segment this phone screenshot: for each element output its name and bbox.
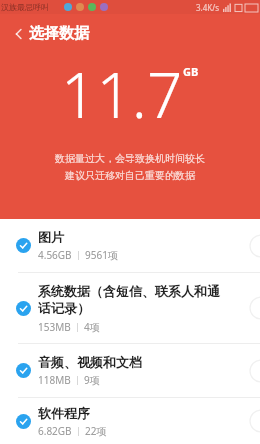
staticText: 4.56GB	[38, 248, 72, 262]
staticText: GB	[183, 64, 199, 79]
staticText: 4项	[84, 320, 100, 334]
staticText: 系统数据（含短信、联系人和通 话记录）	[38, 283, 220, 317]
staticText: 118MB	[38, 373, 71, 387]
staticText: 建议只迁移对自己重要的数据	[65, 169, 195, 182]
staticText: 153MB	[38, 320, 71, 334]
button[interactable]: 音频、视频和文档	[0, 344, 260, 397]
staticText: 22项	[85, 424, 107, 438]
button[interactable]: 返回	[4, 19, 34, 49]
staticText: 音频、视频和文档	[38, 354, 142, 370]
staticText: 11.7	[61, 52, 183, 136]
staticText: 3.4K/s	[196, 2, 220, 13]
staticText: 数据量过大，会导致换机时间较长	[55, 152, 205, 165]
staticText: 图片	[38, 229, 64, 245]
staticText: 6.82GB	[38, 424, 72, 438]
button[interactable]: 系统数据（含短信、联系人和通 话记录）	[0, 273, 260, 343]
staticText: 9项	[84, 373, 100, 387]
staticText: 9561项	[85, 248, 118, 262]
staticText: 选择数据	[29, 24, 89, 43]
staticText: 汉族最忌呼叫	[1, 2, 49, 12]
button[interactable]: 软件程序	[0, 398, 260, 444]
staticText: 软件程序	[38, 405, 90, 421]
button[interactable]: 图片	[0, 219, 260, 272]
